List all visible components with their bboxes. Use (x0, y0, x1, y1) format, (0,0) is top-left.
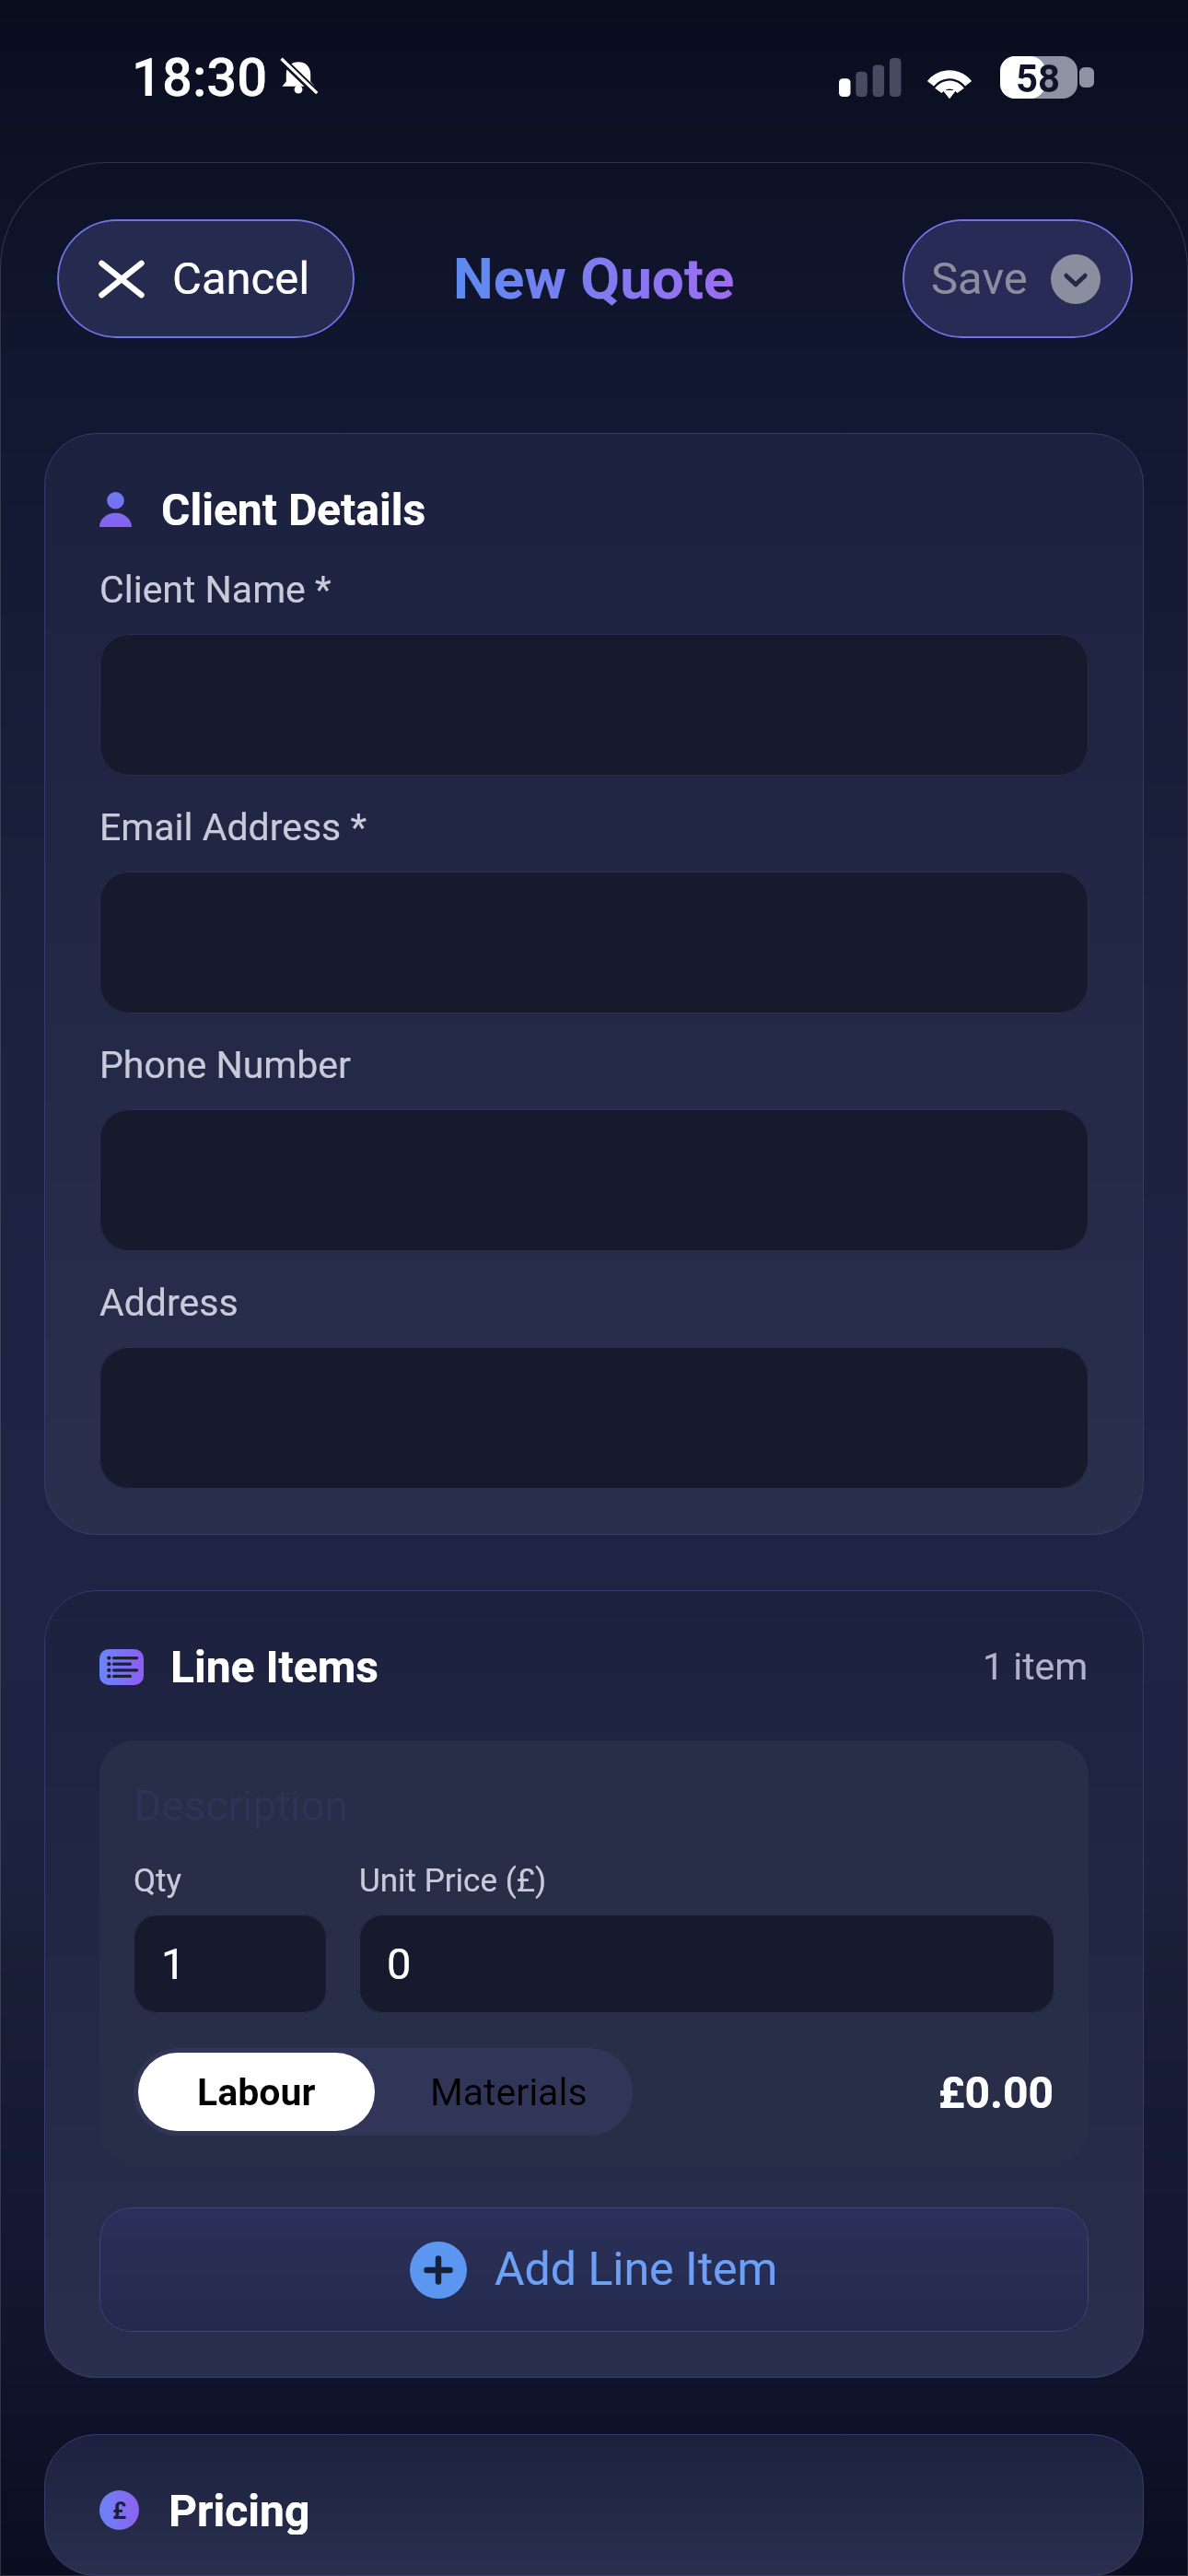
staticText: Save (931, 252, 1028, 305)
button[interactable] (99, 1109, 1089, 1251)
staticText: New Quote (453, 245, 735, 312)
staticText: Cancel (172, 252, 310, 305)
staticText: Address (99, 1281, 239, 1325)
staticText: Add Line Item (495, 2242, 778, 2297)
staticText: Line Items (170, 1641, 379, 1692)
staticText: 1 (161, 1938, 186, 1989)
button[interactable]: 0 (359, 1914, 1054, 2013)
staticText: £0.00 (938, 2067, 1054, 2118)
staticText: 18:30 (132, 46, 268, 109)
button[interactable]: Add Line Item (99, 2207, 1089, 2332)
button[interactable]: Materials (379, 2053, 633, 2131)
staticText: 0 (387, 1938, 412, 1989)
other: Save options (1051, 254, 1101, 304)
staticText: 1 item (983, 1645, 1089, 1689)
staticText: Unit Price (£) (359, 1862, 547, 1900)
button[interactable]: Save (903, 219, 1133, 338)
staticText: £ (112, 2497, 127, 2524)
button[interactable]: 1 (134, 1914, 327, 2013)
staticText: Labour (197, 2070, 316, 2114)
staticText: Client Details (161, 484, 426, 535)
button[interactable]: Labour (138, 2053, 375, 2131)
button[interactable]: Cancel (57, 219, 355, 338)
staticText: 58 (1016, 56, 1061, 99)
button[interactable] (99, 1347, 1089, 1489)
staticText: Materials (430, 2070, 588, 2114)
staticText: Qty (134, 1862, 182, 1900)
staticText: Client Name * (99, 568, 332, 612)
button[interactable] (99, 872, 1089, 1013)
staticText: Phone Number (99, 1043, 351, 1087)
staticText: Pricing (169, 2485, 310, 2535)
staticText: Email Address * (99, 805, 367, 849)
button[interactable] (99, 634, 1089, 776)
staticText: Description (134, 1781, 348, 1831)
